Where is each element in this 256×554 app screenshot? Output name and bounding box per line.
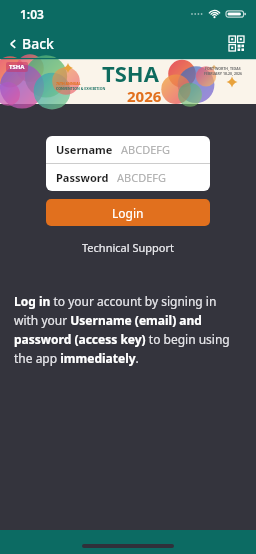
button[interactable]: Username [46, 136, 210, 163]
staticText: Log in to your account by signing in wit… [14, 293, 242, 366]
staticText: CONVENTION & EXHIBITION [56, 86, 106, 91]
staticText: ABCDEFG [117, 170, 166, 185]
button[interactable]: Scan QR code [225, 32, 248, 55]
button[interactable]: Login [46, 199, 210, 226]
button[interactable]: Password [46, 164, 210, 191]
staticText: Technical Support [82, 240, 174, 255]
staticText: FEBRUARY 18-20, 2026 [204, 71, 242, 76]
button[interactable]: Technical Support [0, 240, 256, 255]
staticText: Password [56, 170, 109, 185]
staticText: 2026 [127, 86, 162, 102]
staticText: FORT WORTH, TEXAS [205, 66, 241, 71]
staticText: Back [22, 34, 54, 53]
staticText: TSHA [102, 58, 159, 88]
staticText: 1:03 [20, 6, 44, 22]
staticText: Username [56, 142, 113, 157]
staticText: 76TH ANNUAL [56, 81, 81, 86]
staticText: Login [112, 205, 144, 221]
button[interactable]: Back [0, 31, 64, 56]
staticText: TSHA [9, 63, 25, 71]
staticText: ABCDEFG [121, 142, 170, 157]
